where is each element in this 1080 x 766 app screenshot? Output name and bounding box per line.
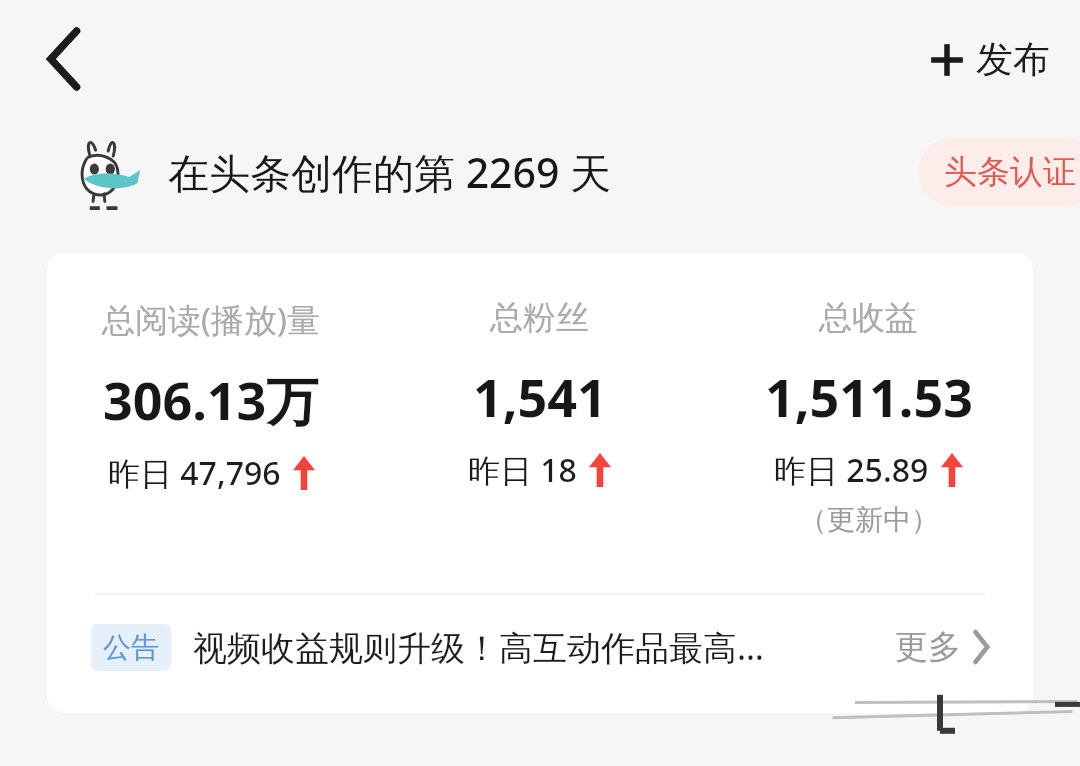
staticText: 发布 [976,36,1050,83]
button[interactable]: 头条认证 [918,138,1080,206]
staticText: 306.13万 [103,364,319,435]
staticText: 总阅读(播放)量 [102,297,320,342]
staticText: 在头条创作的第 2269 天 [168,144,612,200]
staticText: 视频收益规则升级！高互动作品最高… [193,624,764,670]
staticText: 更多 [895,626,961,668]
staticText: 总粉丝 [490,297,589,339]
button[interactable]: 公告 [47,595,1033,699]
button[interactable]: 在头条创作的第 2269 天 [62,130,612,214]
staticText: 1,511.53 [765,361,973,432]
staticText: 头条认证 [944,151,1076,193]
staticText: （更新中） [799,502,939,537]
staticText: 昨日 47,796 [108,451,281,495]
staticText: 总收益 [819,297,918,339]
staticText: 1,541 [473,361,607,432]
button[interactable]: 发布 [921,26,1058,93]
button[interactable]: Back [22,17,106,101]
staticText: 昨日 25.89 [774,448,929,492]
staticText: 昨日 18 [468,448,577,492]
staticText: 公告 [103,630,159,665]
